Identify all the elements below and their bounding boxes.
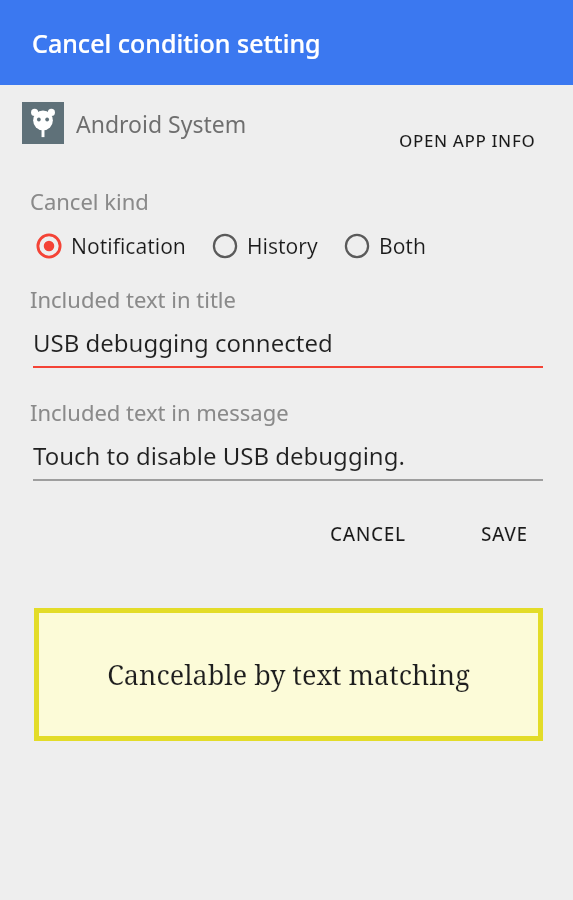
button[interactable]: History [210, 231, 320, 261]
staticText: Cancelable by text matching [107, 656, 470, 693]
staticText: Included text in message [30, 397, 289, 427]
staticText: History [247, 232, 318, 261]
staticText: Android System [76, 108, 247, 139]
button[interactable]: Notification [34, 231, 188, 261]
staticText: Touch to disable USB debugging. [33, 439, 405, 472]
button[interactable]: Cancelable by text matching [34, 608, 543, 741]
staticText: Notification [71, 232, 186, 261]
button[interactable]: Both [342, 231, 428, 261]
staticText: USB debugging connected [33, 326, 333, 359]
button[interactable]: OPEN APP INFO [393, 125, 542, 156]
staticText: Cancel condition setting [32, 26, 321, 60]
button[interactable]: Touch to disable USB debugging. [33, 439, 543, 481]
button[interactable]: USB debugging connected [33, 326, 543, 368]
staticText: Both [379, 232, 426, 261]
button[interactable]: CANCEL [320, 513, 416, 555]
staticText: Cancel kind [30, 186, 149, 216]
staticText: OPEN APP INFO [399, 129, 536, 152]
staticText: SAVE [481, 521, 528, 547]
button[interactable]: SAVE [471, 513, 538, 555]
staticText: CANCEL [330, 521, 406, 547]
staticText: Included text in title [30, 284, 236, 314]
